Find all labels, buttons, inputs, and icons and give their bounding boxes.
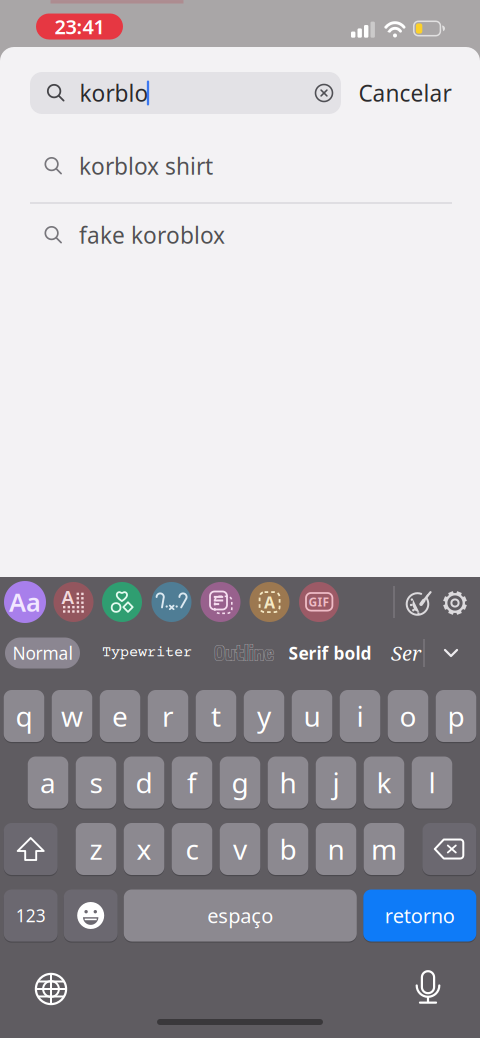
staticText: s xyxy=(89,764,102,801)
button[interactable]: l xyxy=(412,756,452,808)
button[interactable]: retorno xyxy=(363,889,476,941)
button[interactable]: q xyxy=(4,690,44,742)
staticText: 123 xyxy=(16,904,46,927)
button[interactable]: espaço xyxy=(124,889,357,941)
button[interactable]: Emoji xyxy=(64,889,118,941)
button[interactable]: Estilos de texto xyxy=(249,582,289,622)
button[interactable]: Cancelar xyxy=(358,78,451,108)
button[interactable]: i xyxy=(340,690,380,742)
button[interactable]: d xyxy=(124,756,164,808)
staticText: n xyxy=(327,830,344,868)
staticText: m xyxy=(371,830,397,868)
staticText: Aa xyxy=(9,585,41,619)
button[interactable]: korblox shirt xyxy=(0,138,480,194)
button[interactable]: p xyxy=(436,690,476,742)
button[interactable]: Maiúsculas xyxy=(4,823,58,875)
button[interactable]: GIF xyxy=(299,582,339,622)
staticText: A xyxy=(264,592,275,613)
button[interactable]: h xyxy=(268,756,308,808)
staticText: 23:41 xyxy=(54,13,104,40)
button[interactable]: w xyxy=(52,690,92,742)
staticText: e xyxy=(112,697,128,735)
staticText: h xyxy=(279,764,296,801)
button[interactable]: Normal xyxy=(5,637,80,668)
button[interactable]: Arte ASCII xyxy=(53,582,93,622)
staticText: c xyxy=(185,830,198,868)
staticText: retorno xyxy=(385,902,455,929)
button[interactable]: v xyxy=(220,823,260,875)
button[interactable]: j xyxy=(316,756,356,808)
staticText: espaço xyxy=(207,902,273,929)
button[interactable]: Serif bold xyxy=(288,641,371,665)
button[interactable]: x xyxy=(124,823,164,875)
staticText: l xyxy=(428,764,435,801)
staticText: o xyxy=(399,697,416,735)
staticText: Outline xyxy=(214,640,274,666)
button[interactable]: f xyxy=(172,756,212,808)
staticText: Normal xyxy=(12,641,72,664)
staticText: u xyxy=(303,697,320,735)
button[interactable]: e xyxy=(100,690,140,742)
button[interactable]: r xyxy=(148,690,188,742)
button[interactable]: u xyxy=(292,690,332,742)
staticText: r xyxy=(162,697,174,735)
button[interactable]: a xyxy=(28,756,68,808)
button[interactable]: Ditado xyxy=(409,970,446,1004)
button[interactable]: Outline xyxy=(214,640,274,666)
staticText: x xyxy=(136,830,151,868)
button[interactable]: s xyxy=(76,756,116,808)
staticText: A xyxy=(62,584,75,609)
staticText: q xyxy=(15,697,32,735)
button[interactable]: t xyxy=(196,690,236,742)
button[interactable]: c xyxy=(172,823,212,875)
staticText: Typewriter xyxy=(102,644,192,662)
button[interactable]: Apagar xyxy=(422,823,476,875)
staticText: w xyxy=(61,697,83,735)
staticText: a xyxy=(40,764,56,801)
staticText: t xyxy=(211,697,221,735)
button[interactable]: k xyxy=(364,756,404,808)
staticText: GIF xyxy=(308,594,329,610)
staticText: fake koroblox xyxy=(79,220,225,250)
staticText: d xyxy=(135,764,152,801)
staticText: i xyxy=(356,697,363,735)
staticText: v xyxy=(233,830,247,868)
button[interactable]: g xyxy=(220,756,260,808)
staticText: p xyxy=(447,697,464,735)
staticText: z xyxy=(89,830,102,868)
button[interactable]: z xyxy=(76,823,116,875)
button[interactable]: Números xyxy=(4,889,58,941)
staticText: Cancelar xyxy=(358,78,451,108)
button[interactable]: y xyxy=(244,690,284,742)
staticText: f xyxy=(187,764,197,801)
staticText: Ser xyxy=(391,639,421,667)
button[interactable]: Fontes xyxy=(4,581,46,623)
button[interactable]: Limpar texto xyxy=(314,83,333,102)
button[interactable]: Símbolos xyxy=(102,582,142,622)
button[interactable]: n xyxy=(316,823,356,875)
button[interactable]: Ajustes xyxy=(441,589,469,617)
button[interactable]: Typewriter xyxy=(102,644,192,662)
button[interactable]: Trocar teclado xyxy=(34,972,67,1005)
button[interactable]: m xyxy=(364,823,404,875)
staticText: b xyxy=(279,830,296,868)
staticText: j xyxy=(332,764,339,801)
button[interactable]: o xyxy=(388,690,428,742)
staticText: y xyxy=(257,697,271,735)
staticText: Serif bold xyxy=(288,641,371,665)
button[interactable]: fake koroblox xyxy=(0,207,480,263)
button[interactable]: Cores xyxy=(405,590,432,616)
staticText: korblo xyxy=(79,78,148,108)
button[interactable]: Ser xyxy=(391,639,421,667)
staticText: korblox shirt xyxy=(79,151,213,181)
staticText: g xyxy=(231,764,248,801)
button[interactable]: Modelos xyxy=(200,582,240,622)
button[interactable]: Mais estilos xyxy=(431,637,471,668)
button[interactable]: Kaomoji xyxy=(151,582,191,622)
staticText: k xyxy=(376,764,391,801)
button[interactable]: b xyxy=(268,823,308,875)
